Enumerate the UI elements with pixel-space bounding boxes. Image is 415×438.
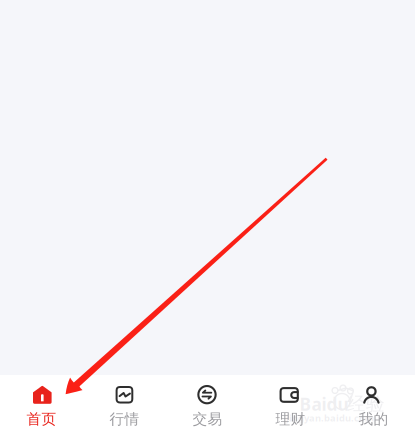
staticText: 交易 (192, 410, 222, 428)
staticText: 我的 (358, 410, 388, 428)
button[interactable]: 行情 (83, 375, 166, 438)
staticText: 理财 (275, 410, 305, 428)
staticText: jingyan.baidu.com (286, 412, 374, 424)
staticText: 经验 (347, 392, 385, 415)
button[interactable]: 理财 (249, 375, 332, 438)
button[interactable]: 首页 (0, 375, 83, 438)
button[interactable]: 我的 (332, 375, 415, 438)
staticText: 首页 (26, 410, 56, 428)
staticText: 行情 (109, 410, 139, 428)
button[interactable]: 交易 (166, 375, 249, 438)
staticText: Baidu (299, 392, 348, 415)
